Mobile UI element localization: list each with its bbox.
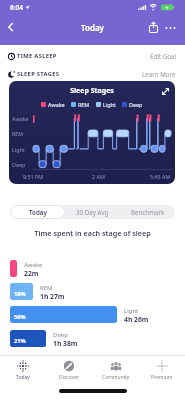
staticText: 30 Day Avg bbox=[76, 208, 109, 216]
staticText: Awake bbox=[48, 101, 65, 108]
button[interactable]: Community bbox=[95, 357, 137, 383]
staticText: Light bbox=[103, 101, 116, 108]
staticText: 22m bbox=[24, 269, 39, 278]
button[interactable]: TIME ASLEEP bbox=[8, 46, 176, 66]
staticText: REM bbox=[12, 130, 24, 137]
staticText: Deep bbox=[129, 101, 143, 108]
staticText: 9:51 PM bbox=[23, 173, 44, 180]
staticText: TIME ASLEEP bbox=[17, 52, 57, 60]
staticText: 5:45 AM bbox=[150, 173, 171, 180]
staticText: 6:04 bbox=[10, 3, 23, 12]
staticText: Benchmark bbox=[131, 208, 165, 216]
button[interactable]: Today bbox=[2, 357, 44, 383]
staticText: 56% bbox=[14, 313, 26, 321]
button[interactable]: Discover bbox=[48, 357, 90, 383]
staticText: Time spent in each stage of sleep bbox=[0, 228, 185, 238]
staticText: REM bbox=[78, 101, 90, 108]
button[interactable]: Benchmark bbox=[120, 205, 175, 219]
button[interactable]: 30 Day Avg bbox=[65, 205, 120, 219]
staticText: 4h 26m bbox=[124, 315, 149, 324]
button[interactable]: Premium bbox=[141, 357, 183, 383]
staticText: Deep bbox=[12, 161, 26, 168]
button[interactable] bbox=[147, 21, 160, 34]
button[interactable]: Today bbox=[10, 205, 65, 219]
staticText: Light bbox=[124, 307, 139, 315]
staticText: Learn More bbox=[142, 70, 176, 78]
button[interactable]: SLEEP STAGES bbox=[8, 64, 176, 84]
staticText: 18% bbox=[14, 290, 26, 298]
staticText: Community bbox=[102, 374, 130, 381]
staticText: Today bbox=[29, 208, 47, 216]
staticText: Awake bbox=[12, 115, 29, 122]
staticText: Edit Goal bbox=[150, 52, 176, 60]
staticText: Sleep Stages bbox=[9, 86, 175, 96]
button[interactable] bbox=[164, 23, 178, 33]
staticText: Today bbox=[0, 22, 185, 33]
staticText: 21% bbox=[14, 337, 26, 345]
button[interactable]: Sleep Stages bbox=[9, 81, 175, 184]
staticText: 1h 38m bbox=[53, 339, 78, 348]
button[interactable] bbox=[4, 20, 18, 34]
staticText: Awake bbox=[24, 261, 43, 269]
staticText: Discover bbox=[59, 374, 80, 381]
staticText: Today bbox=[16, 374, 30, 381]
staticText: Light bbox=[12, 146, 25, 153]
staticText: 2 AM bbox=[92, 173, 105, 180]
staticText: SLEEP STAGES bbox=[17, 70, 60, 78]
staticText: REM bbox=[40, 284, 53, 292]
staticText: Premium bbox=[151, 374, 173, 381]
staticText: 1h 27m bbox=[40, 292, 65, 301]
staticText: Deep bbox=[53, 331, 68, 339]
